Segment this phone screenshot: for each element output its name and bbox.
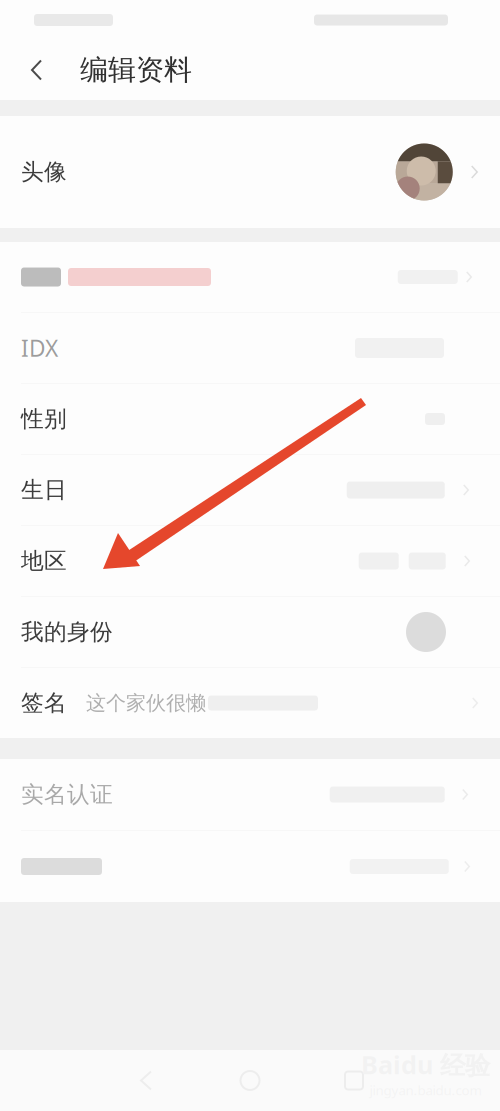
button[interactable]: 实名认证 xyxy=(0,759,500,830)
button[interactable]: 我的身份 xyxy=(0,597,500,667)
staticText: 头像 xyxy=(21,158,67,186)
button[interactable] xyxy=(0,242,500,312)
staticText: 地区 xyxy=(21,547,67,575)
button[interactable]: Back xyxy=(13,40,59,100)
staticText: 性别 xyxy=(21,405,67,433)
staticText: 我的身份 xyxy=(21,618,113,646)
staticText: Baidu 经验 xyxy=(361,1047,490,1081)
button[interactable] xyxy=(0,831,500,902)
button[interactable]: 性别 xyxy=(0,384,500,454)
staticText: 编辑资料 xyxy=(80,53,192,87)
staticText: IDX xyxy=(21,333,58,363)
staticText: 生日 xyxy=(21,476,67,504)
button[interactable]: IDX xyxy=(0,313,500,383)
button[interactable]: 生日 xyxy=(0,455,500,525)
button[interactable]: Recent apps xyxy=(330,1056,378,1104)
button[interactable]: 地区 xyxy=(0,526,500,596)
staticText: 实名认证 xyxy=(21,781,113,808)
button[interactable]: 签名 xyxy=(0,668,500,738)
button[interactable]: 头像 xyxy=(0,116,500,228)
staticText: 这个家伙很懒 xyxy=(86,691,206,715)
staticText: 签名 xyxy=(21,689,67,717)
